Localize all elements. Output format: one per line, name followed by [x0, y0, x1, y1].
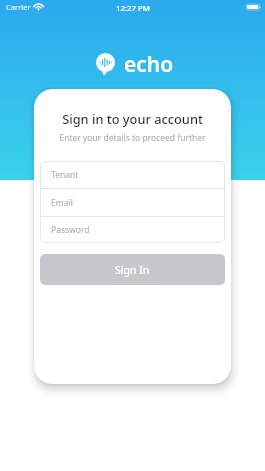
staticText: Carrier	[6, 2, 31, 12]
button[interactable]: Email	[40, 189, 225, 216]
staticText: Sign In	[115, 263, 150, 277]
staticText: Password	[51, 224, 90, 236]
staticText: Email	[51, 197, 73, 209]
staticText: echo	[124, 50, 174, 79]
button[interactable]: Password	[40, 217, 225, 243]
staticText: Sign in to your account	[34, 110, 231, 127]
staticText: 12:27 PM	[116, 3, 150, 14]
staticText: Tenant	[51, 169, 79, 181]
button[interactable]: Sign In	[40, 254, 225, 285]
button[interactable]: Tenant	[40, 161, 225, 188]
staticText: Enter your details to proceed further	[34, 132, 231, 144]
